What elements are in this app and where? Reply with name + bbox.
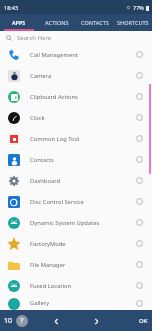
staticText: OK: [139, 317, 148, 325]
staticText: ?: [20, 316, 24, 326]
button[interactable]: FactoryMode: [0, 233, 152, 254]
button[interactable]: Gallery: [0, 296, 152, 310]
button[interactable]: SHORTCUTS: [114, 14, 152, 31]
staticText: Common Log Tool: [30, 135, 136, 143]
staticText: CONTACTS: [81, 19, 109, 26]
button[interactable]: Search: [6, 31, 152, 44]
button[interactable]: Call Management: [0, 44, 152, 65]
button[interactable]: Clock: [0, 107, 152, 128]
staticText: SHORTCUTS: [117, 19, 149, 26]
button[interactable]: ACTIONS: [38, 14, 76, 31]
button[interactable]: Camera: [0, 65, 152, 86]
button[interactable]: Help: [16, 315, 28, 327]
staticText: APPS: [12, 19, 26, 26]
staticText: 77%: [133, 4, 144, 11]
button[interactable]: Clipboard Actions: [0, 86, 152, 107]
staticText: Fused Location: [30, 282, 136, 290]
staticText: FactoryMode: [30, 240, 136, 248]
button[interactable]: Dynamic System Updates: [0, 212, 152, 233]
staticText: File Manager: [30, 261, 136, 269]
other: Search: [6, 35, 12, 41]
button[interactable]: APPS: [0, 14, 38, 31]
button[interactable]: Fused Location: [0, 275, 152, 296]
staticText: Search Here: [17, 34, 52, 42]
staticText: ACTIONS: [45, 19, 69, 26]
button[interactable]: Next: [89, 314, 103, 328]
staticText: Dynamic System Updates: [30, 219, 136, 227]
button[interactable]: Previous: [49, 314, 63, 328]
button[interactable]: Common Log Tool: [0, 128, 152, 149]
button[interactable]: Disc Control Service: [0, 191, 152, 212]
button[interactable]: File Manager: [0, 254, 152, 275]
button[interactable]: Contacts: [0, 149, 152, 170]
staticText: Clipboard Actions: [30, 93, 136, 101]
button[interactable]: CONTACTS: [76, 14, 114, 31]
staticText: 10: [4, 316, 13, 326]
button[interactable]: Dashboard: [0, 170, 152, 191]
button[interactable]: OK: [139, 317, 148, 325]
staticText: 18:43: [4, 4, 19, 11]
staticText: Call Management: [30, 51, 136, 59]
staticText: Dashboard: [30, 177, 136, 185]
staticText: Contacts: [30, 156, 136, 164]
staticText: Gallery: [30, 299, 136, 307]
staticText: Disc Control Service: [30, 198, 136, 206]
staticText: Camera: [30, 72, 136, 80]
staticText: Clock: [30, 114, 136, 122]
